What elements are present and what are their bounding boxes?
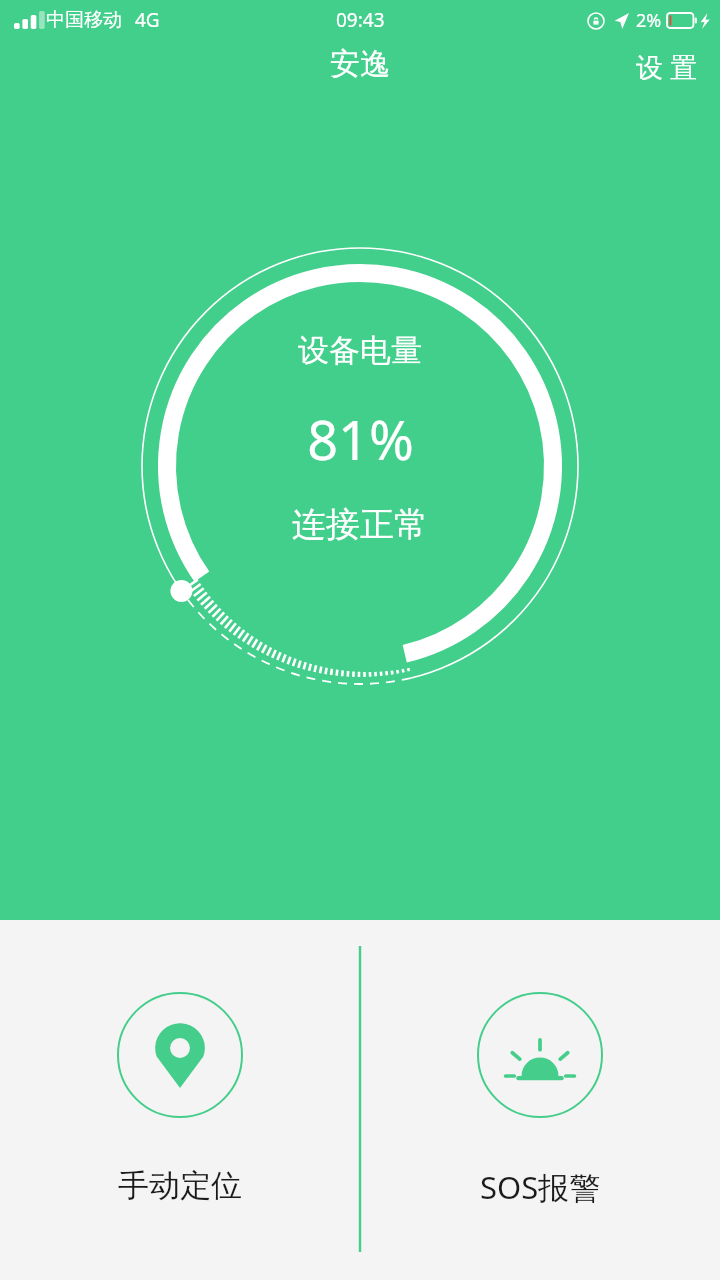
- button[interactable]: 设 置: [614, 40, 720, 88]
- staticText: 中国移动: [46, 8, 122, 32]
- staticText: 安逸: [330, 45, 390, 83]
- staticText: 2%: [636, 8, 662, 33]
- staticText: 09:43: [336, 7, 385, 33]
- staticText: 81%: [307, 402, 414, 476]
- staticText: 连接正常: [292, 503, 428, 546]
- staticText: 手动定位: [118, 1166, 242, 1205]
- button[interactable]: SOS报警: [360, 920, 720, 1208]
- staticText: 设 置: [636, 48, 698, 80]
- staticText: 设备电量: [298, 331, 422, 370]
- button[interactable]: 手动定位: [0, 920, 360, 1205]
- staticText: 4G: [135, 7, 160, 33]
- staticText: SOS报警: [480, 1166, 601, 1208]
